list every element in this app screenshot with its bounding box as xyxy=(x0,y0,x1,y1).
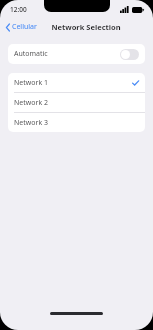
staticText: Network Selection xyxy=(51,22,121,32)
staticText: Network 3 xyxy=(14,118,48,128)
button[interactable]: Network 3 xyxy=(8,113,145,132)
button[interactable]: Network 2 xyxy=(8,93,145,112)
button[interactable]: Automatic network selection toggle xyxy=(120,49,139,60)
button[interactable]: Cellular xyxy=(4,20,39,34)
staticText: Network 2 xyxy=(14,98,48,108)
staticText: Cellular xyxy=(12,22,37,32)
button[interactable]: Network 1 xyxy=(8,73,145,92)
staticText: Automatic xyxy=(14,49,48,59)
staticText: 12:00 xyxy=(10,5,27,14)
staticText: Network 1 xyxy=(14,78,48,88)
button[interactable]: Automatic xyxy=(8,44,145,64)
